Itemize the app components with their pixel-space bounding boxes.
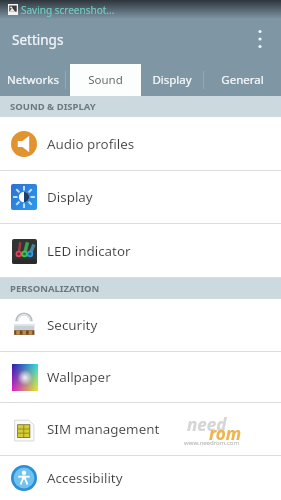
staticText: Security [47,316,98,334]
staticText: SIM management [47,420,160,438]
button[interactable]: Audio profiles [0,117,281,170]
staticText: rom [209,422,242,445]
button[interactable]: General [204,64,281,96]
button[interactable]: SIM management [0,403,281,455]
button[interactable]: LED indicator [0,224,281,277]
button[interactable]: Wallpaper [0,352,281,402]
button[interactable]: Display [141,64,203,96]
staticText: LED indicator [47,242,131,260]
staticText: Audio profiles [47,135,135,153]
staticText: General [221,72,264,88]
button[interactable]: More options [247,16,273,61]
staticText: Wallpaper [47,368,111,386]
staticText: www.needrom.com [184,439,240,447]
staticText: PERSONALIZATION [10,282,100,295]
staticText: Display [152,72,192,88]
staticText: Saving screenshot... [21,3,115,17]
button[interactable]: Networks [0,64,66,96]
staticText: Accessibility [47,469,123,487]
staticText: Display [47,188,93,206]
button[interactable]: Display [0,171,281,223]
staticText: Settings [12,31,64,49]
button[interactable]: Sound [70,64,141,96]
staticText: need [187,413,227,436]
staticText: Sound [88,72,123,88]
button[interactable]: Accessibility [0,456,281,500]
button[interactable]: Security [0,299,281,351]
staticText: SOUND & DISPLAY [10,100,96,113]
staticText: Networks [7,72,59,88]
